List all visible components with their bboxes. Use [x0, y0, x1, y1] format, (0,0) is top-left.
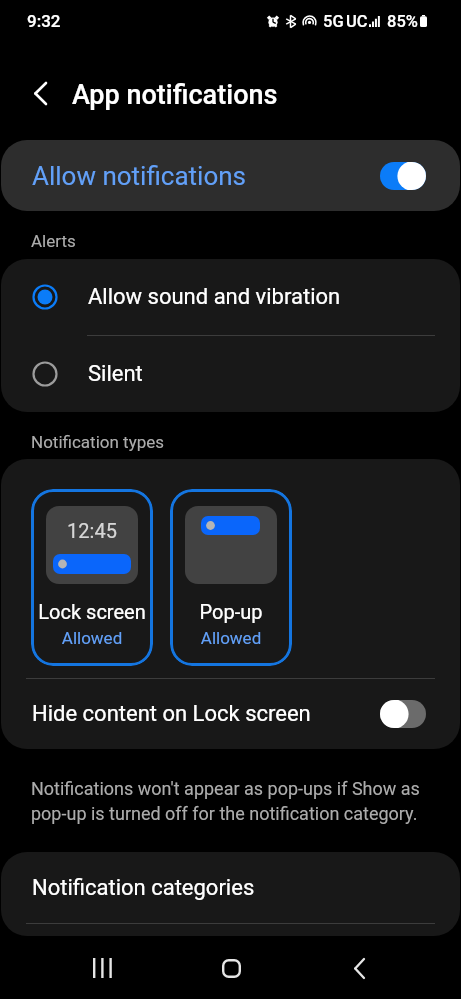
staticText: 9:32: [27, 11, 61, 31]
button[interactable]: Recent apps: [73, 939, 131, 997]
staticText: 12:45: [46, 519, 138, 542]
button[interactable]: Silent: [1, 336, 460, 412]
button[interactable]: Notification categories: [1, 852, 460, 924]
button[interactable]: Back: [330, 939, 388, 997]
staticText: Pop-up: [170, 600, 292, 623]
staticText: 85%: [387, 12, 418, 31]
button[interactable]: Allow sound and vibration: [1, 259, 460, 335]
button[interactable]: Navigate up: [22, 75, 58, 111]
staticText: Notification categories: [32, 875, 255, 901]
staticText: Hide content on Lock screen: [32, 701, 311, 727]
button[interactable]: Hide content on Lock screen: [1, 679, 460, 749]
staticText: App notifications: [72, 79, 278, 111]
staticText: Allowed: [31, 628, 153, 648]
staticText: Silent: [88, 361, 143, 387]
button[interactable]: Turn on: [380, 700, 426, 728]
staticText: UC: [346, 12, 368, 31]
button[interactable]: 12:45: [31, 489, 153, 666]
button[interactable]: Allow notifications: [1, 140, 460, 211]
staticText: Lock screen: [31, 600, 153, 623]
staticText: Allow sound and vibration: [88, 284, 341, 310]
button[interactable]: Home: [202, 939, 260, 997]
staticText: Allow notifications: [32, 161, 247, 191]
staticText: 5G: [323, 12, 344, 31]
staticText: Alerts: [31, 231, 76, 251]
button[interactable]: Pop-up: [170, 489, 292, 666]
button[interactable]: Turn off: [380, 162, 426, 190]
staticText: Notifications won't appear as pop-ups if…: [31, 778, 453, 825]
staticText: Notification types: [31, 432, 165, 452]
staticText: Allowed: [170, 628, 292, 648]
